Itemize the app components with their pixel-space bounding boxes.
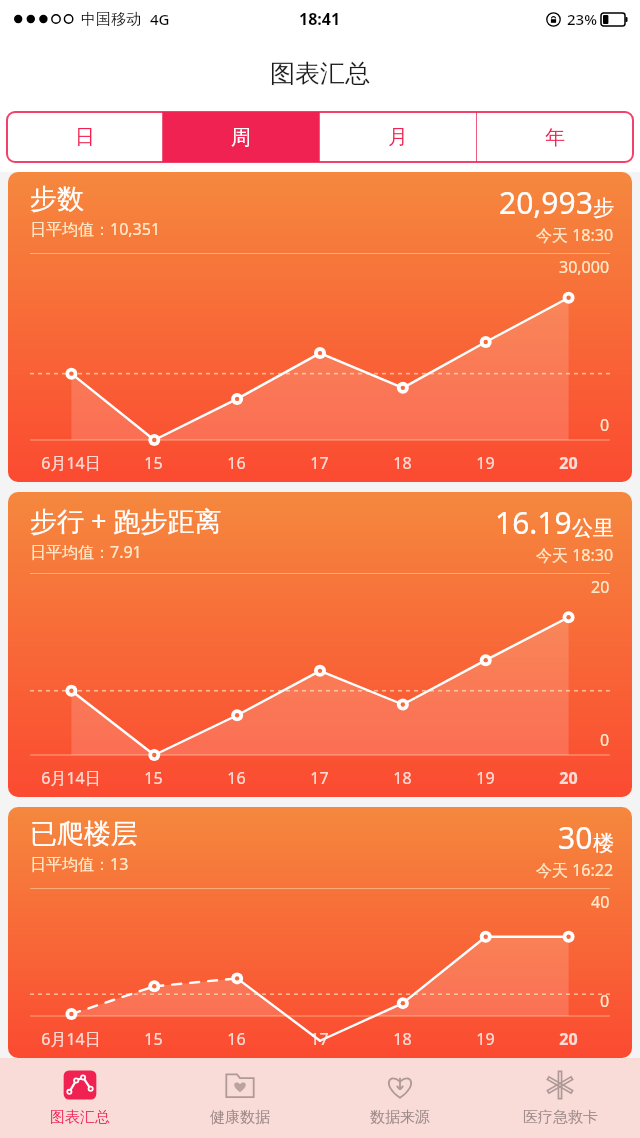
button[interactable]: 数据来源 — [320, 1058, 480, 1138]
staticText: 20 — [591, 576, 610, 598]
staticText: 40 — [591, 891, 610, 913]
staticText: 16.19 — [495, 502, 572, 543]
staticText: 楼 — [593, 830, 614, 856]
staticText: 23% — [567, 9, 597, 29]
staticText: 16 — [227, 452, 246, 474]
button[interactable]: 年 — [477, 112, 633, 162]
button[interactable]: 月 — [320, 112, 476, 162]
staticText: 18 — [393, 1028, 412, 1050]
staticText: 月 — [388, 125, 408, 150]
staticText: 已爬楼层 — [30, 817, 138, 851]
staticText: 6月14日 — [41, 1028, 101, 1050]
staticText: 步行 + 跑步距离 — [30, 502, 222, 539]
button[interactable]: 医疗急救卡 — [480, 1058, 640, 1138]
staticText: 15 — [144, 452, 163, 474]
button[interactable]: 周 — [163, 112, 319, 162]
staticText: 19 — [476, 452, 495, 474]
staticText: 日平均值：7.91 — [30, 541, 142, 563]
staticText: 19 — [476, 1028, 495, 1050]
staticText: 18 — [393, 452, 412, 474]
staticText: 医疗急救卡 — [523, 1108, 598, 1127]
button[interactable]: 步行 + 跑步距离 — [8, 492, 632, 797]
staticText: 16 — [227, 767, 246, 789]
staticText: 0 — [600, 990, 610, 1012]
staticText: 日平均值：10,351 — [30, 218, 161, 240]
staticText: 16 — [227, 1028, 246, 1050]
button[interactable]: 已爬楼层 — [8, 807, 632, 1058]
staticText: 步 — [593, 195, 614, 221]
other: 医疗急救卡 — [541, 1066, 579, 1104]
staticText: 图表汇总 — [50, 1108, 110, 1127]
staticText: 今天 18:30 — [536, 224, 614, 246]
staticText: 6月14日 — [41, 767, 101, 789]
other: 健康数据 — [221, 1066, 259, 1104]
staticText: 图表汇总 — [270, 58, 370, 89]
staticText: 20 — [559, 767, 578, 789]
staticText: 4G — [150, 9, 170, 29]
staticText: 20 — [559, 452, 578, 474]
staticText: 30,000 — [559, 256, 610, 278]
button[interactable]: 步数 — [8, 172, 632, 482]
staticText: 0 — [600, 414, 610, 436]
staticText: 6月14日 — [41, 452, 101, 474]
staticText: 19 — [476, 767, 495, 789]
staticText: 30 — [558, 817, 593, 858]
staticText: 健康数据 — [210, 1108, 270, 1127]
staticText: 15 — [144, 1028, 163, 1050]
staticText: 周 — [231, 125, 251, 150]
staticText: 17 — [310, 767, 329, 789]
staticText: 中国移动 — [81, 10, 141, 29]
staticText: 步数 — [30, 182, 84, 216]
button[interactable]: 日 — [7, 112, 162, 162]
staticText: 日 — [75, 125, 95, 150]
staticText: 数据来源 — [370, 1108, 430, 1127]
other: 数据来源 — [381, 1066, 419, 1104]
staticText: 今天 18:30 — [536, 544, 614, 566]
other: 图表汇总 — [61, 1066, 99, 1104]
staticText: 17 — [310, 452, 329, 474]
staticText: 20,993 — [499, 182, 593, 223]
staticText: 18:41 — [299, 8, 341, 30]
staticText: 0 — [600, 729, 610, 751]
button[interactable]: 图表汇总 — [0, 1058, 160, 1138]
staticText: 18 — [393, 767, 412, 789]
staticText: 日平均值：13 — [30, 853, 129, 875]
button[interactable]: 健康数据 — [160, 1058, 320, 1138]
staticText: 公里 — [572, 515, 614, 541]
staticText: 17 — [310, 1028, 329, 1050]
staticText: 15 — [144, 767, 163, 789]
staticText: 20 — [559, 1028, 578, 1050]
staticText: 今天 16:22 — [536, 859, 614, 881]
staticText: 年 — [545, 125, 565, 150]
